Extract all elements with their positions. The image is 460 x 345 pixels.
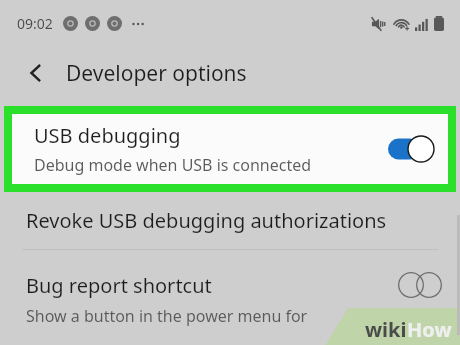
staticText: Developer options bbox=[66, 59, 247, 88]
button[interactable]: Bug report shortcut toggle, off bbox=[398, 272, 442, 298]
staticText: Show a button in the power menu for bbox=[26, 305, 308, 327]
button[interactable]: Revoke USB debugging authorizations bbox=[0, 192, 460, 249]
button[interactable]: USB debugging toggle, on bbox=[388, 136, 434, 162]
staticText: Revoke USB debugging authorizations bbox=[26, 207, 387, 234]
staticText: wiki bbox=[365, 316, 407, 343]
staticText: Debug mode when USB is connected bbox=[34, 154, 312, 176]
button[interactable]: Bug report shortcut bbox=[0, 250, 460, 330]
staticText: 09:02 bbox=[17, 14, 53, 33]
staticText: Bug report shortcut bbox=[26, 272, 212, 299]
button[interactable]: Back bbox=[0, 46, 460, 100]
staticText: How bbox=[407, 316, 452, 343]
button[interactable]: USB debugging bbox=[12, 114, 448, 184]
button[interactable]: Back bbox=[22, 59, 50, 87]
staticText: USB debugging bbox=[34, 122, 181, 149]
